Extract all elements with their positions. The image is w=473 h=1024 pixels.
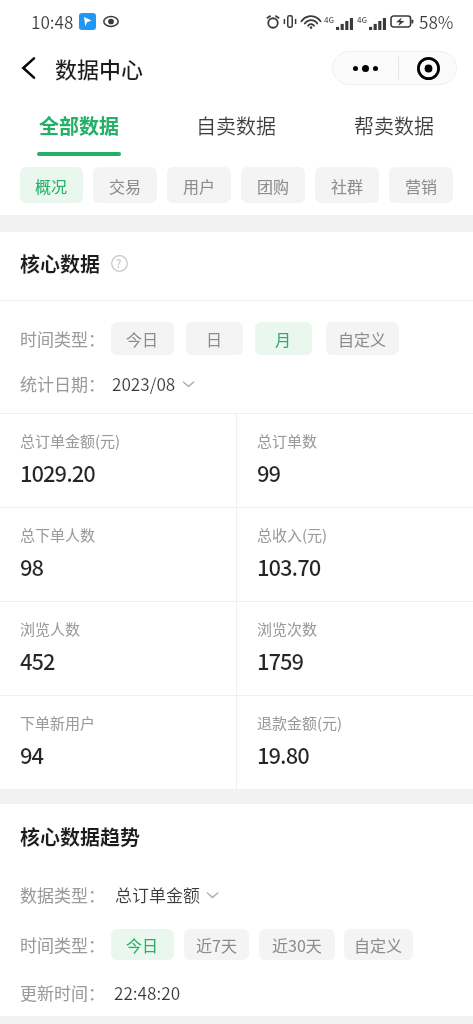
staticText: 营销 (405, 174, 438, 197)
staticText: 452 (20, 644, 55, 676)
staticText: 22:48:20 (114, 980, 181, 1005)
staticText: 数据类型： (20, 882, 105, 907)
button[interactable]: 总订单金额(元) (0, 414, 236, 507)
button[interactable]: 全部数据 (0, 94, 157, 160)
staticText: 2023/08 (112, 371, 176, 396)
button[interactable]: 交易 (93, 167, 157, 203)
staticText: 时间类型： (20, 932, 105, 957)
button[interactable]: 下单新用户 (0, 696, 236, 789)
staticText: 1029.20 (20, 456, 95, 488)
staticText: 下单新用户 (20, 712, 96, 734)
staticText: 98 (20, 550, 44, 582)
button[interactable]: 浏览人数 (0, 602, 236, 695)
staticText: 自定义 (354, 933, 403, 956)
button[interactable]: 自定义 (344, 929, 413, 960)
staticText: 帮卖数据 (354, 111, 434, 140)
button[interactable]: 退款金额(元) (237, 696, 473, 789)
staticText: 10:48 (31, 9, 74, 34)
button[interactable]: 自卖数据 (157, 94, 315, 160)
button[interactable]: 近7天 (184, 929, 249, 960)
staticText: 更新时间： (20, 980, 105, 1005)
staticText: 浏览人数 (20, 618, 81, 640)
button[interactable]: More options (332, 51, 398, 85)
staticText: 总订单数 (257, 430, 318, 452)
button[interactable]: 概况 (20, 167, 83, 203)
staticText: 总收入(元) (257, 524, 328, 546)
staticText: 核心数据趋势 (20, 822, 140, 851)
staticText: 交易 (109, 174, 142, 197)
staticText: 用户 (183, 174, 216, 197)
staticText: 团购 (257, 174, 290, 197)
button[interactable]: 总订单金额 (115, 882, 219, 907)
staticText: 退款金额(元) (257, 712, 343, 734)
button[interactable]: 浏览次数 (237, 602, 473, 695)
staticText: 99 (257, 456, 281, 488)
staticText: 58% (419, 9, 454, 34)
staticText: 数据中心 (55, 52, 144, 84)
staticText: 今日 (126, 933, 159, 956)
staticText: 94 (20, 738, 44, 770)
button[interactable]: 日 (186, 322, 243, 355)
button[interactable]: 总下单人数 (0, 508, 236, 601)
staticText: 近30天 (272, 933, 322, 956)
staticText: 浏览次数 (257, 618, 318, 640)
staticText: 核心数据 (20, 249, 100, 278)
staticText: 4G (357, 14, 368, 26)
button[interactable]: 营销 (389, 167, 453, 203)
staticText: 近7天 (196, 933, 237, 956)
staticText: 1759 (257, 644, 304, 676)
button[interactable]: 近30天 (259, 929, 335, 960)
staticText: 月 (275, 327, 292, 350)
button[interactable]: 团购 (241, 167, 305, 203)
button[interactable]: 2023/08 (112, 371, 195, 396)
staticText: 统计日期： (20, 371, 105, 396)
button[interactable]: 用户 (167, 167, 231, 203)
staticText: 19.80 (257, 738, 309, 770)
staticText: 全部数据 (39, 111, 119, 140)
staticText: 总订单金额 (115, 882, 200, 907)
staticText: 总订单金额(元) (20, 430, 121, 452)
staticText: 时间类型： (20, 326, 105, 351)
button[interactable]: 今日 (111, 322, 174, 355)
button[interactable]: 月 (255, 322, 312, 355)
button[interactable]: Back (10, 50, 46, 86)
staticText: 日 (206, 327, 223, 350)
button[interactable]: 总收入(元) (237, 508, 473, 601)
staticText: 4G (324, 14, 335, 26)
staticText: 概况 (35, 174, 68, 197)
button[interactable]: 社群 (315, 167, 379, 203)
button[interactable]: 自定义 (326, 322, 399, 355)
staticText: 社群 (331, 174, 364, 197)
button[interactable]: Close mini program (399, 51, 457, 85)
button[interactable]: 今日 (111, 929, 174, 960)
button[interactable]: 帮卖数据 (315, 94, 473, 160)
staticText: 自卖数据 (196, 111, 276, 140)
staticText: 103.70 (257, 550, 321, 582)
staticText: 今日 (126, 327, 159, 350)
staticText: 总下单人数 (20, 524, 96, 546)
button[interactable]: Help (109, 253, 129, 273)
staticText: 自定义 (338, 327, 387, 350)
staticText: ? (116, 255, 122, 271)
button[interactable]: 总订单数 (237, 414, 473, 507)
